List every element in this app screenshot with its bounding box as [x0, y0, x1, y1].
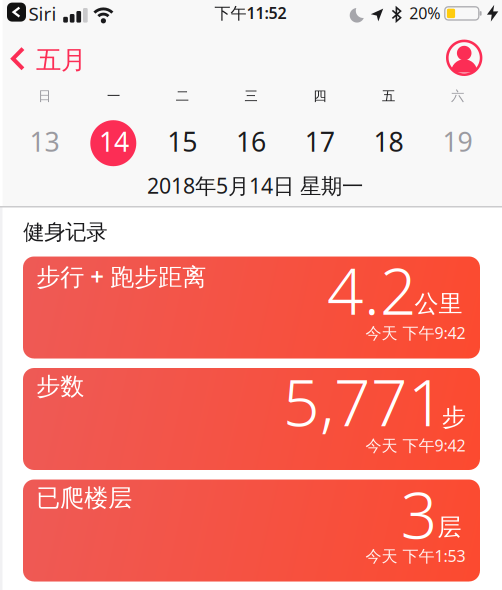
staticText: 下午11:52: [214, 2, 286, 23]
staticText: 六: [451, 88, 464, 104]
staticText: 3: [401, 471, 438, 556]
staticText: 今天 下午9:42: [365, 435, 465, 456]
staticText: 步数: [36, 372, 84, 401]
staticText: 五: [382, 88, 395, 104]
staticText: 4.2: [327, 247, 417, 332]
staticText: 健身记录: [23, 219, 107, 245]
staticText: 今天 下午9:42: [365, 322, 465, 343]
staticText: 五月: [36, 45, 86, 76]
staticText: 2018年5月14日 星期一: [147, 171, 363, 200]
staticText: 四: [313, 88, 326, 104]
staticText: 日: [38, 88, 51, 104]
staticText: 19: [442, 124, 472, 159]
staticText: 14: [99, 124, 129, 159]
staticText: 步行 + 跑步距离: [36, 260, 206, 292]
staticText: 17: [305, 124, 335, 159]
staticText: 5,771: [283, 359, 445, 444]
staticText: 16: [236, 124, 266, 159]
staticText: 18: [374, 124, 404, 159]
staticText: 15: [167, 124, 197, 159]
staticText: 已爬楼层: [36, 483, 132, 513]
staticText: 13: [30, 124, 60, 159]
staticText: 步: [442, 403, 466, 432]
staticText: 公里: [414, 289, 462, 319]
staticText: Siri: [28, 1, 56, 26]
staticText: 20%: [409, 2, 440, 24]
staticText: 今天 下午1:53: [365, 545, 465, 566]
staticText: 二: [176, 88, 189, 104]
staticText: 一: [107, 88, 120, 104]
staticText: 层: [437, 513, 461, 542]
staticText: 三: [244, 88, 257, 104]
